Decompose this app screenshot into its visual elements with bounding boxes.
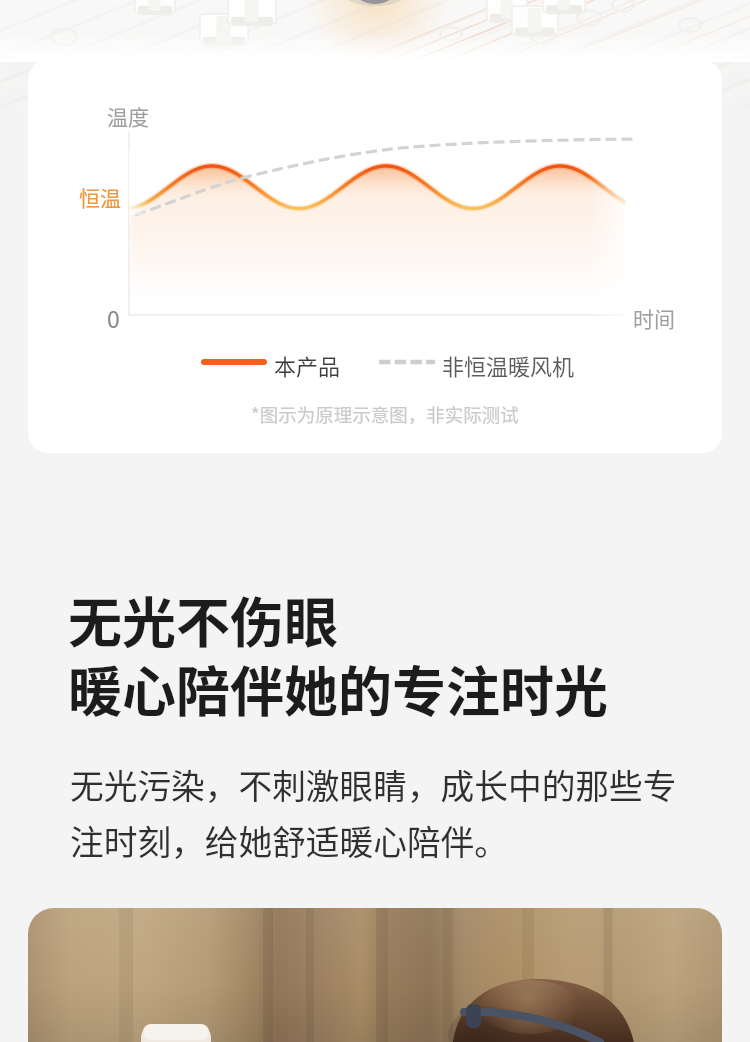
staticText: 本产品 [274,349,341,381]
staticText: 时间 [633,303,675,333]
staticText: 无光污染，不刺激眼睛，成长中的那些专 [70,760,677,809]
staticText: 恒温 [79,182,121,212]
staticText: 温度 [107,101,149,131]
staticText: *图示为原理示意图，非实际测试 [251,401,519,428]
staticText: 0 [107,301,120,334]
staticText: 无光不伤眼 [68,580,338,658]
button[interactable] [28,908,722,1042]
staticText: 非恒温暖风机 [442,349,575,381]
staticText: 暖心陪伴她的专注时光 [68,649,608,727]
button[interactable]: 温度 [28,60,722,453]
staticText: 注时刻，给她舒适暖心陪伴。 [70,816,508,865]
